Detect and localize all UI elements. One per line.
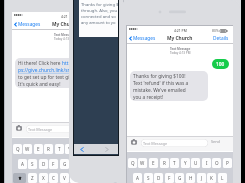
button[interactable]: O: [212, 158, 221, 168]
button[interactable]: Q: [128, 158, 137, 168]
staticText: W: [140, 160, 145, 166]
button[interactable]: S: [28, 159, 37, 169]
button[interactable]: Messages: [14, 19, 41, 29]
button[interactable]: D: [39, 159, 48, 169]
button[interactable]: A: [18, 159, 27, 169]
button[interactable]: U: [191, 158, 200, 168]
staticText: Text Message: [170, 47, 191, 51]
staticText: Y: [184, 160, 187, 166]
button[interactable]: Camera: [16, 125, 22, 131]
staticText: V: [63, 175, 66, 181]
staticText: J: [201, 175, 203, 181]
button[interactable]: X: [39, 173, 48, 183]
button[interactable]: Next: [105, 147, 109, 152]
button[interactable]: H: [186, 173, 195, 183]
button[interactable]: G: [60, 159, 69, 169]
button[interactable]: D: [154, 173, 163, 183]
button[interactable]: Send: [211, 139, 220, 144]
staticText: G: [63, 161, 67, 167]
button[interactable]: P: [223, 158, 232, 168]
staticText: L: [221, 175, 224, 181]
staticText: Q: [131, 160, 135, 166]
button[interactable]: Text Message: [26, 125, 92, 133]
staticText: htt: [62, 60, 69, 67]
staticText: F: [52, 161, 55, 167]
button[interactable]: Y: [65, 144, 74, 154]
button[interactable]: R: [160, 158, 169, 168]
staticText: 80%: [212, 28, 219, 33]
button[interactable]: K: [207, 173, 216, 183]
button[interactable]: W: [138, 158, 147, 168]
staticText: Thanks for giving $100!: [133, 73, 186, 80]
staticText: E: [37, 146, 40, 152]
button[interactable]: E: [149, 158, 158, 168]
button[interactable]: Thanks for giving $100!: [130, 71, 208, 101]
button[interactable]: Messages: [129, 33, 156, 43]
button[interactable]: 100: [212, 59, 229, 69]
staticText: C: [52, 175, 55, 181]
button[interactable]: C: [49, 173, 58, 183]
button[interactable]: T: [170, 158, 179, 168]
staticText: 80%: [96, 14, 103, 19]
staticText: 100: [216, 61, 225, 68]
staticText: Details: [213, 35, 229, 42]
button[interactable]: V: [60, 173, 69, 183]
button[interactable]: U: [75, 144, 84, 154]
staticText: Z: [31, 175, 34, 181]
staticText: Text Message: [143, 141, 168, 146]
staticText: Messages: [133, 35, 156, 42]
button[interactable]: S: [144, 173, 153, 183]
button[interactable]: Details: [213, 33, 229, 43]
button[interactable]: E: [34, 144, 43, 154]
staticText: any amount to yo: [81, 20, 116, 26]
staticText: A: [136, 175, 139, 181]
button[interactable]: T: [55, 144, 64, 154]
staticText: Messages: [18, 21, 41, 28]
button[interactable]: A: [133, 173, 142, 183]
button[interactable]: Text Message: [141, 139, 208, 147]
staticText: O: [215, 160, 219, 166]
button[interactable]: Camera: [131, 139, 137, 145]
staticText: ps://give.church.link/sm: [18, 67, 72, 74]
button[interactable]: R: [44, 144, 53, 154]
staticText: Thanks for giving $1: [81, 2, 118, 8]
staticText: E: [152, 160, 155, 166]
button[interactable]: Hi there! Click here: [15, 58, 93, 88]
button[interactable]: P: [107, 144, 116, 154]
button[interactable]: Y: [181, 158, 190, 168]
staticText: X: [42, 175, 45, 181]
button[interactable]: B: [70, 173, 79, 183]
staticText: A: [21, 161, 24, 167]
staticText: S: [31, 161, 34, 167]
button[interactable]: W: [23, 144, 32, 154]
button[interactable]: J: [197, 173, 206, 183]
staticText: W: [25, 146, 30, 152]
button[interactable]: F: [49, 159, 58, 169]
button[interactable]: Previous: [80, 147, 84, 152]
button[interactable]: Previous: [74, 144, 118, 154]
staticText: P: [226, 160, 229, 166]
button[interactable]: G: [175, 173, 184, 183]
staticText: Text Message: [28, 127, 53, 132]
button[interactable]: Z: [28, 173, 37, 183]
button[interactable]: Q: [13, 144, 22, 154]
button[interactable]: I: [202, 158, 211, 168]
button[interactable]: F: [165, 173, 174, 183]
button[interactable]: L: [218, 173, 227, 183]
button[interactable]: Shift: [13, 173, 26, 183]
